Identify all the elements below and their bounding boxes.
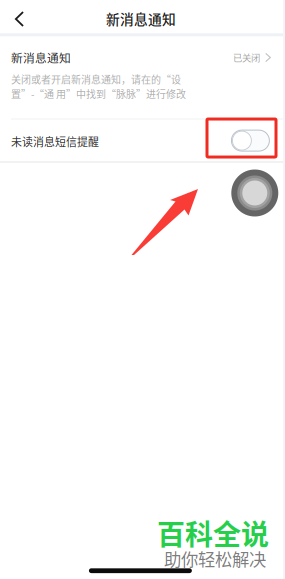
staticText: 百科全说 xyxy=(157,512,269,553)
staticText: 未读消息短信提醒 xyxy=(11,134,99,149)
staticText: 新消息通知 xyxy=(11,49,71,66)
staticText: 新消息通知 xyxy=(106,9,176,28)
staticText: 关闭或者开启新消息通知，请在的“设 置”-“通 用”中找到“脉脉”进行修改 xyxy=(11,72,186,101)
button[interactable]: 未读消息短信提醒 xyxy=(231,130,269,151)
staticText: 助你轻松解决 xyxy=(164,546,266,571)
staticText: 已关闭 xyxy=(233,51,260,64)
button[interactable]: Back xyxy=(1,2,39,36)
button[interactable]: 新消息通知 xyxy=(0,37,285,119)
